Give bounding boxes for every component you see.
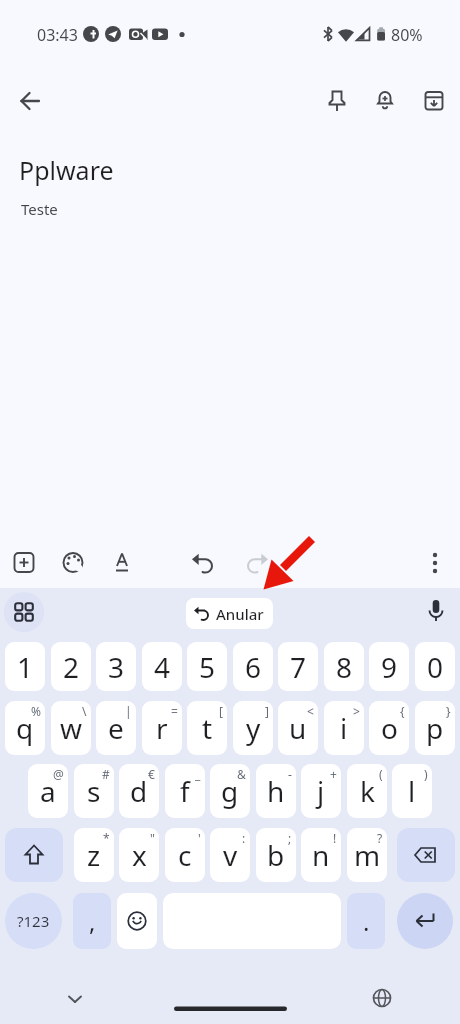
staticText: 6 — [245, 648, 262, 686]
button[interactable] — [319, 82, 355, 118]
button[interactable]: v — [210, 828, 250, 882]
button[interactable]: u — [278, 701, 318, 755]
button[interactable] — [367, 82, 403, 118]
staticText: y — [246, 709, 261, 747]
staticText: o — [381, 709, 398, 747]
button[interactable]: b — [256, 828, 296, 882]
staticText: _ — [195, 766, 201, 782]
staticText: i — [340, 709, 348, 747]
staticText: | — [125, 703, 132, 719]
staticText: ?123 — [17, 911, 50, 931]
button[interactable]: o — [369, 701, 409, 755]
button[interactable]: m — [347, 828, 387, 882]
staticText: ' — [198, 830, 201, 846]
button[interactable] — [188, 544, 224, 580]
staticText: € — [148, 766, 155, 782]
button[interactable] — [6, 544, 42, 580]
staticText: v — [223, 836, 238, 874]
staticText: { — [400, 703, 405, 719]
button[interactable]: 7 — [278, 642, 318, 691]
staticText: Pplware — [19, 153, 114, 187]
button[interactable]: s — [74, 764, 114, 818]
button[interactable]: r — [142, 701, 182, 755]
button[interactable]: Teste — [21, 199, 58, 219]
staticText: 4 — [154, 648, 171, 686]
button[interactable]: Anular — [186, 598, 273, 629]
button[interactable] — [117, 893, 157, 949]
staticText: q — [16, 709, 34, 747]
button[interactable]: h — [256, 764, 296, 818]
button[interactable]: f — [165, 764, 205, 818]
button[interactable]: g — [210, 764, 250, 818]
button[interactable]: 5 — [187, 642, 227, 691]
button[interactable]: 2 — [51, 642, 91, 691]
button[interactable] — [364, 980, 400, 1016]
button[interactable] — [397, 828, 455, 882]
button[interactable] — [104, 544, 140, 580]
staticText: m — [354, 836, 381, 874]
button[interactable]: 4 — [142, 642, 182, 691]
button[interactable]: Pplware — [19, 153, 114, 187]
staticText: b — [267, 836, 285, 874]
button[interactable] — [347, 893, 385, 949]
button[interactable]: a — [28, 764, 68, 818]
button[interactable]: k — [347, 764, 387, 818]
staticText: + — [330, 766, 337, 782]
button[interactable]: l — [392, 764, 432, 818]
staticText: a — [40, 772, 56, 810]
staticText: Teste — [21, 199, 58, 219]
button[interactable] — [5, 828, 63, 882]
button[interactable] — [416, 592, 456, 632]
staticText: n — [312, 836, 330, 874]
staticText: f — [180, 772, 190, 810]
button[interactable] — [73, 893, 111, 949]
button[interactable]: w — [51, 701, 91, 755]
staticText: # — [102, 766, 110, 782]
button[interactable] — [55, 544, 91, 580]
staticText: < — [307, 703, 314, 719]
button[interactable]: e — [96, 701, 136, 755]
button[interactable]: c — [165, 828, 205, 882]
button[interactable]: 9 — [369, 642, 409, 691]
button[interactable] — [237, 544, 273, 580]
staticText: @ — [53, 766, 64, 782]
button[interactable]: z — [74, 828, 114, 882]
button[interactable]: 0 — [415, 642, 455, 691]
button[interactable]: n — [301, 828, 341, 882]
staticText: Anular — [216, 604, 264, 624]
button[interactable] — [5, 893, 62, 949]
button[interactable]: 3 — [96, 642, 136, 691]
staticText: 7 — [290, 648, 307, 686]
button[interactable]: t — [187, 701, 227, 755]
staticText: t — [202, 709, 213, 747]
button[interactable]: p — [415, 701, 455, 755]
button[interactable] — [397, 893, 453, 949]
staticText: ] — [265, 703, 269, 719]
button[interactable]: d — [119, 764, 159, 818]
button[interactable]: y — [233, 701, 273, 755]
staticText: ? — [377, 830, 383, 846]
staticText: - — [288, 766, 292, 782]
button[interactable] — [57, 980, 93, 1016]
button[interactable]: x — [119, 828, 159, 882]
button[interactable]: j — [301, 764, 341, 818]
button[interactable]: 1 — [5, 642, 45, 691]
staticText: p — [426, 709, 444, 747]
staticText: z — [87, 836, 101, 874]
staticText: s — [87, 772, 101, 810]
button[interactable] — [12, 83, 48, 119]
button[interactable]: q — [5, 701, 45, 755]
staticText: u — [289, 709, 307, 747]
button[interactable] — [416, 82, 452, 118]
button[interactable]: 8 — [324, 642, 364, 691]
staticText: l — [408, 772, 416, 810]
button[interactable]: 6 — [233, 642, 273, 691]
staticText: } — [446, 703, 451, 719]
staticText: 0 — [427, 648, 444, 686]
staticText: [ — [219, 703, 223, 719]
button[interactable] — [417, 545, 453, 581]
staticText: 2 — [63, 648, 80, 686]
button[interactable] — [4, 592, 44, 632]
button[interactable]: i — [324, 701, 364, 755]
